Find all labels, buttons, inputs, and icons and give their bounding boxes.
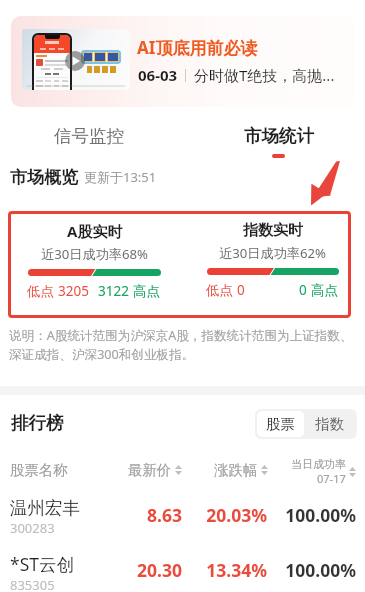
- staticText: 高点: [133, 283, 160, 300]
- staticText: 股票: [266, 415, 295, 433]
- staticText: 股票名称: [10, 461, 68, 479]
- staticText: 0: [237, 281, 245, 299]
- staticText: 当日成功率: [291, 457, 346, 471]
- staticText: 指数: [315, 415, 344, 433]
- button[interactable]: 温州宏丰: [0, 490, 365, 545]
- staticText: 3205: [58, 282, 89, 300]
- button[interactable]: 指数: [306, 411, 353, 437]
- button[interactable]: A股实时: [11, 212, 176, 316]
- staticText: 信号监控: [54, 125, 124, 147]
- staticText: 3122: [98, 282, 129, 300]
- staticText: 13.34%: [197, 558, 267, 582]
- staticText: 涨跌幅: [214, 461, 258, 479]
- staticText: 07-17: [317, 471, 346, 486]
- staticText: 市场概览: [10, 167, 78, 188]
- button[interactable]: AI顶底用前必读: [11, 16, 354, 107]
- staticText: 300283: [10, 519, 55, 537]
- staticText: 更新于13:51: [84, 168, 157, 186]
- staticText: 20.30: [120, 558, 182, 582]
- staticText: 低点: [27, 283, 54, 300]
- staticText: 说明：A股统计范围为沪深京A股，指数统计范围为上证指数、深证成指、沪深300和创…: [9, 327, 354, 362]
- staticText: 市场统计: [244, 125, 314, 147]
- staticText: 高点: [311, 282, 338, 299]
- staticText: 100.00%: [272, 503, 356, 527]
- staticText: 100.00%: [272, 558, 356, 582]
- staticText: 低点: [206, 282, 233, 299]
- button[interactable]: 股票: [257, 411, 304, 437]
- button[interactable]: 信号监控: [40, 121, 137, 151]
- staticText: A股实时: [67, 221, 123, 241]
- staticText: 最新价: [128, 461, 172, 479]
- staticText: 06-03: [138, 65, 178, 85]
- staticText: 8.63: [120, 503, 182, 527]
- staticText: 温州宏丰: [10, 497, 80, 519]
- staticText: *ST云创: [10, 552, 74, 576]
- staticText: 近30日成功率68%: [41, 245, 149, 263]
- staticText: 指数实时: [243, 221, 303, 240]
- staticText: AI顶底用前必读: [137, 36, 258, 59]
- button[interactable]: 市场统计: [230, 121, 327, 151]
- button[interactable]: *ST云创: [0, 545, 365, 592]
- staticText: 20.03%: [197, 503, 267, 527]
- staticText: 分时做T绝技，高抛...: [194, 65, 335, 85]
- button[interactable]: 指数实时: [190, 212, 354, 316]
- staticText: 0: [299, 281, 307, 299]
- staticText: 排行榜: [11, 412, 64, 434]
- staticText: 835305: [10, 576, 55, 592]
- staticText: 近30日成功率62%: [219, 244, 327, 262]
